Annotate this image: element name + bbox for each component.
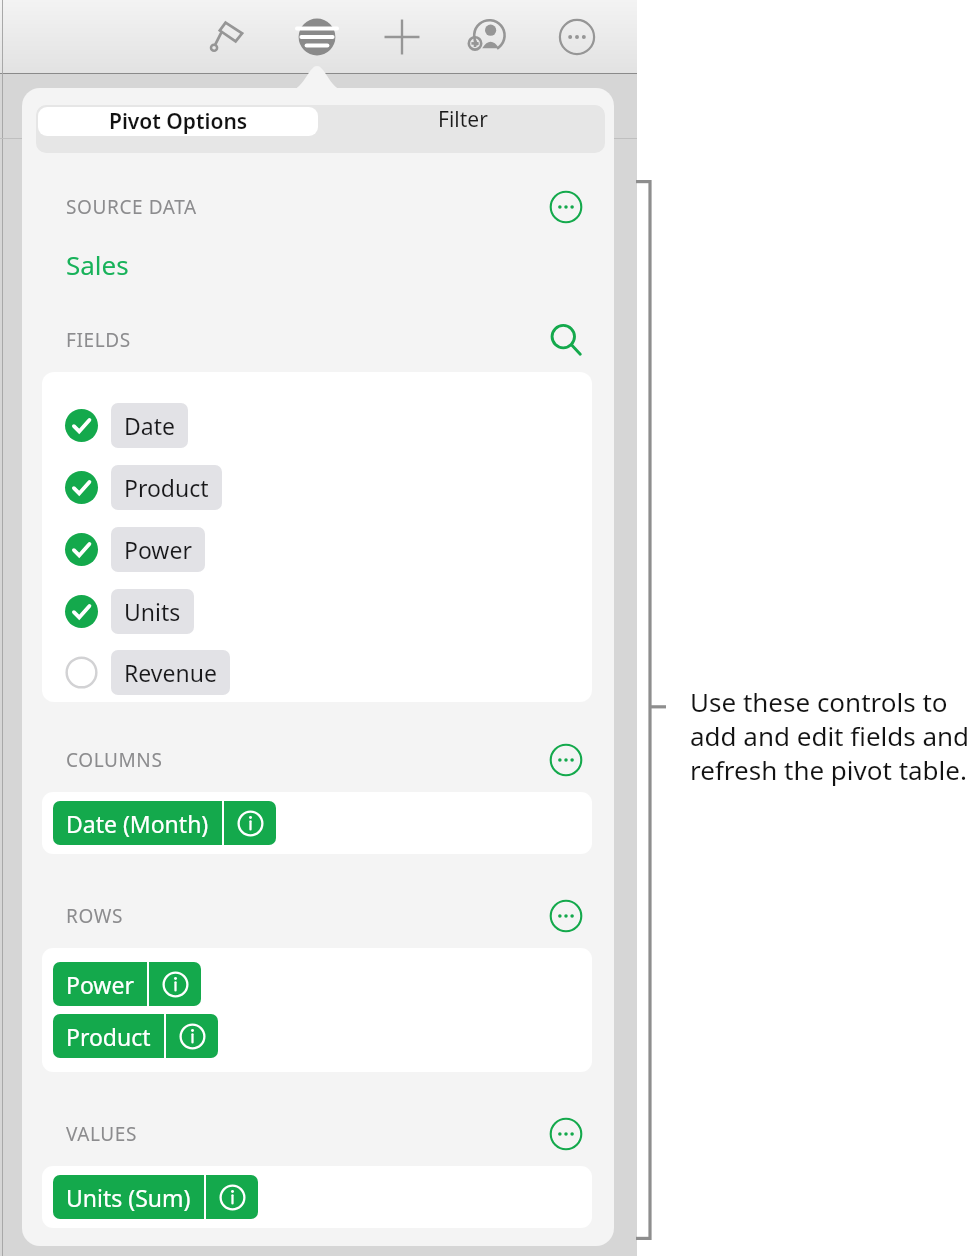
staticText: Units (Sum) (66, 1182, 191, 1213)
button[interactable]: Sales (66, 247, 129, 282)
button[interactable]: Format (200, 10, 254, 64)
staticText: SOURCE DATA (66, 194, 197, 220)
button[interactable]: Revenue (42, 642, 592, 702)
button[interactable]: More (550, 10, 604, 64)
button[interactable]: Pivot Options (38, 107, 318, 136)
staticText: Revenue (124, 657, 217, 688)
button[interactable]: Collaborate (460, 10, 514, 64)
button[interactable]: Product (42, 456, 592, 518)
button[interactable]: Column options (544, 738, 588, 782)
staticText: VALUES (66, 1121, 138, 1147)
other: Power info (149, 962, 201, 1006)
button[interactable]: Filter (320, 105, 605, 134)
button[interactable]: Source data options (544, 185, 588, 229)
button[interactable]: Insert (375, 10, 429, 64)
staticText: Pivot Options (109, 107, 248, 136)
button[interactable]: Power (42, 518, 592, 580)
button[interactable]: Power (53, 962, 201, 1006)
other: Product info (166, 1014, 218, 1058)
staticText: Product (124, 472, 209, 503)
button[interactable]: Value options (544, 1112, 588, 1156)
staticText: Units (124, 596, 181, 627)
staticText: Product (66, 1021, 151, 1052)
button[interactable]: Organize (290, 10, 344, 64)
button[interactable]: Units (Sum) (53, 1175, 258, 1219)
staticText: Power (66, 969, 134, 1000)
button[interactable]: Date (Month) (53, 801, 276, 845)
staticText: FIELDS (66, 327, 131, 353)
staticText: ROWS (66, 903, 123, 929)
staticText: Use these controls to add and edit field… (690, 684, 975, 787)
staticText: Filter (438, 105, 488, 134)
staticText: Date (124, 410, 175, 441)
staticText: COLUMNS (66, 747, 163, 773)
button[interactable]: Units (42, 580, 592, 642)
button[interactable]: Search fields (544, 318, 588, 362)
staticText: Date (Month) (66, 808, 209, 839)
button[interactable]: Row options (544, 894, 588, 938)
staticText: Sales (66, 247, 129, 282)
other: Date (Month) info (224, 801, 276, 845)
staticText: Power (124, 534, 192, 565)
other: Units (Sum) info (206, 1175, 258, 1219)
button[interactable]: Product (53, 1014, 218, 1058)
button[interactable]: Date (42, 394, 592, 456)
